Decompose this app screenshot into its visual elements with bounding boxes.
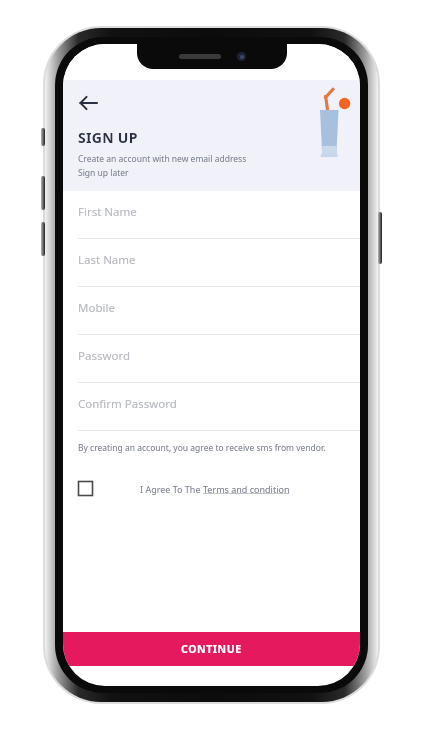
button[interactable]: First Name (63, 191, 360, 239)
button[interactable]: Back (71, 86, 105, 120)
staticText: I Agree To The (140, 483, 203, 495)
button[interactable]: Password (63, 335, 360, 383)
staticText: Password (78, 348, 131, 364)
staticText: First Name (78, 204, 137, 220)
staticText: Last Name (78, 252, 136, 268)
staticText: Mobile (78, 300, 115, 316)
button[interactable]: CONTINUE (63, 632, 360, 666)
button[interactable]: I Agree To The (63, 481, 360, 496)
button[interactable]: Mobile (63, 287, 360, 335)
staticText: Terms and condition (203, 483, 290, 495)
button[interactable]: Last Name (63, 239, 360, 287)
staticText: Confirm Password (78, 396, 177, 412)
staticText: By creating an account, you agree to rec… (78, 442, 326, 454)
staticText: CONTINUE (181, 642, 242, 656)
button[interactable]: Confirm Password (63, 383, 360, 431)
button[interactable]: Sign up later (78, 167, 129, 179)
staticText: Create an account with new email address (78, 153, 247, 165)
staticText: SIGN UP (78, 128, 138, 147)
staticText: Sign up later (78, 167, 129, 179)
